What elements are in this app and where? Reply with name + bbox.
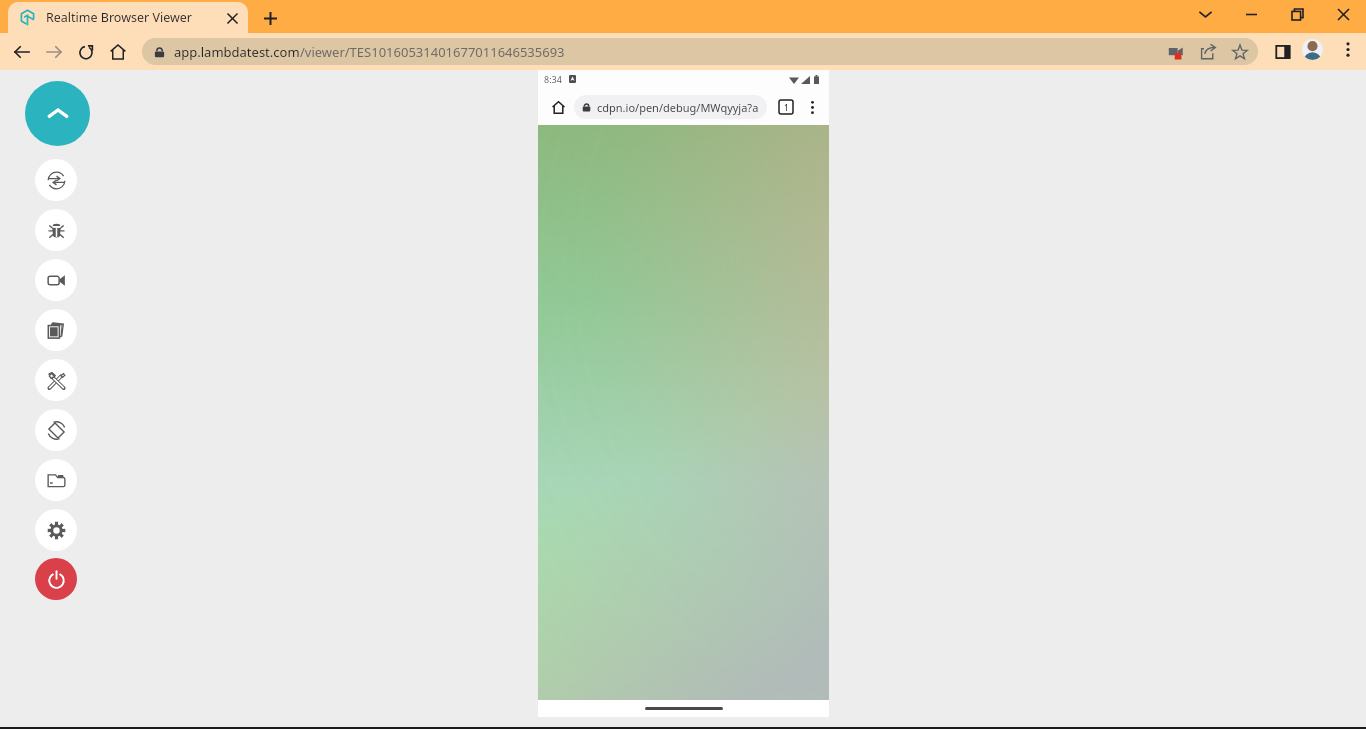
button[interactable]: Files — [35, 459, 77, 501]
button[interactable]: Side panel — [1267, 36, 1299, 68]
button[interactable]: Reload — [70, 36, 102, 68]
button[interactable]: Maximize — [1274, 0, 1320, 28]
button[interactable]: Bookmark this tab — [1224, 36, 1256, 68]
button[interactable]: Realtime Browser Viewer — [8, 2, 248, 33]
button[interactable]: Screenshot — [35, 309, 77, 351]
staticText: app.lambdatest.com — [174, 43, 300, 61]
button[interactable]: Tab search — [1182, 0, 1228, 28]
button[interactable]: Customise and control Chrome — [1332, 33, 1364, 65]
staticText: cdpn.io/pen/debug/MWqyyja?a — [597, 100, 759, 115]
staticText: /viewer/TES10160531401677011646535693 — [300, 43, 565, 61]
button[interactable]: Profile — [1296, 33, 1328, 65]
button[interactable]: Switch device — [35, 159, 77, 201]
button[interactable]: Tabs — [775, 96, 797, 118]
button[interactable]: Rotate device — [35, 409, 77, 451]
button[interactable]: Collapse toolbar — [25, 81, 90, 146]
button[interactable]: Back — [6, 36, 38, 68]
button[interactable]: Home — [546, 95, 570, 119]
button[interactable]: Minimize — [1228, 0, 1274, 28]
button[interactable]: Report bug — [35, 209, 77, 251]
button[interactable]: New tab — [257, 5, 283, 31]
staticText: 8:34 — [544, 73, 562, 85]
staticText: Realtime Browser Viewer — [46, 9, 192, 26]
button[interactable]: cdpn.io/pen/debug/MWqyyja?a — [574, 95, 767, 119]
button[interactable]: app.lambdatest.com — [142, 38, 1258, 65]
staticText: 1 — [784, 102, 789, 113]
button[interactable]: Media controls — [1160, 36, 1192, 68]
button[interactable]: Developer tools — [35, 359, 77, 401]
button[interactable]: Close window — [1320, 0, 1366, 28]
button[interactable]: Stop session — [35, 558, 77, 600]
button[interactable]: Home — [102, 36, 134, 68]
button[interactable]: More options — [801, 96, 823, 118]
button[interactable]: Close tab — [223, 9, 241, 27]
button[interactable]: Settings — [35, 509, 77, 551]
button[interactable]: Forward — [38, 36, 70, 68]
button[interactable]: Share this page — [1192, 36, 1224, 68]
button[interactable]: Record video — [35, 259, 77, 301]
